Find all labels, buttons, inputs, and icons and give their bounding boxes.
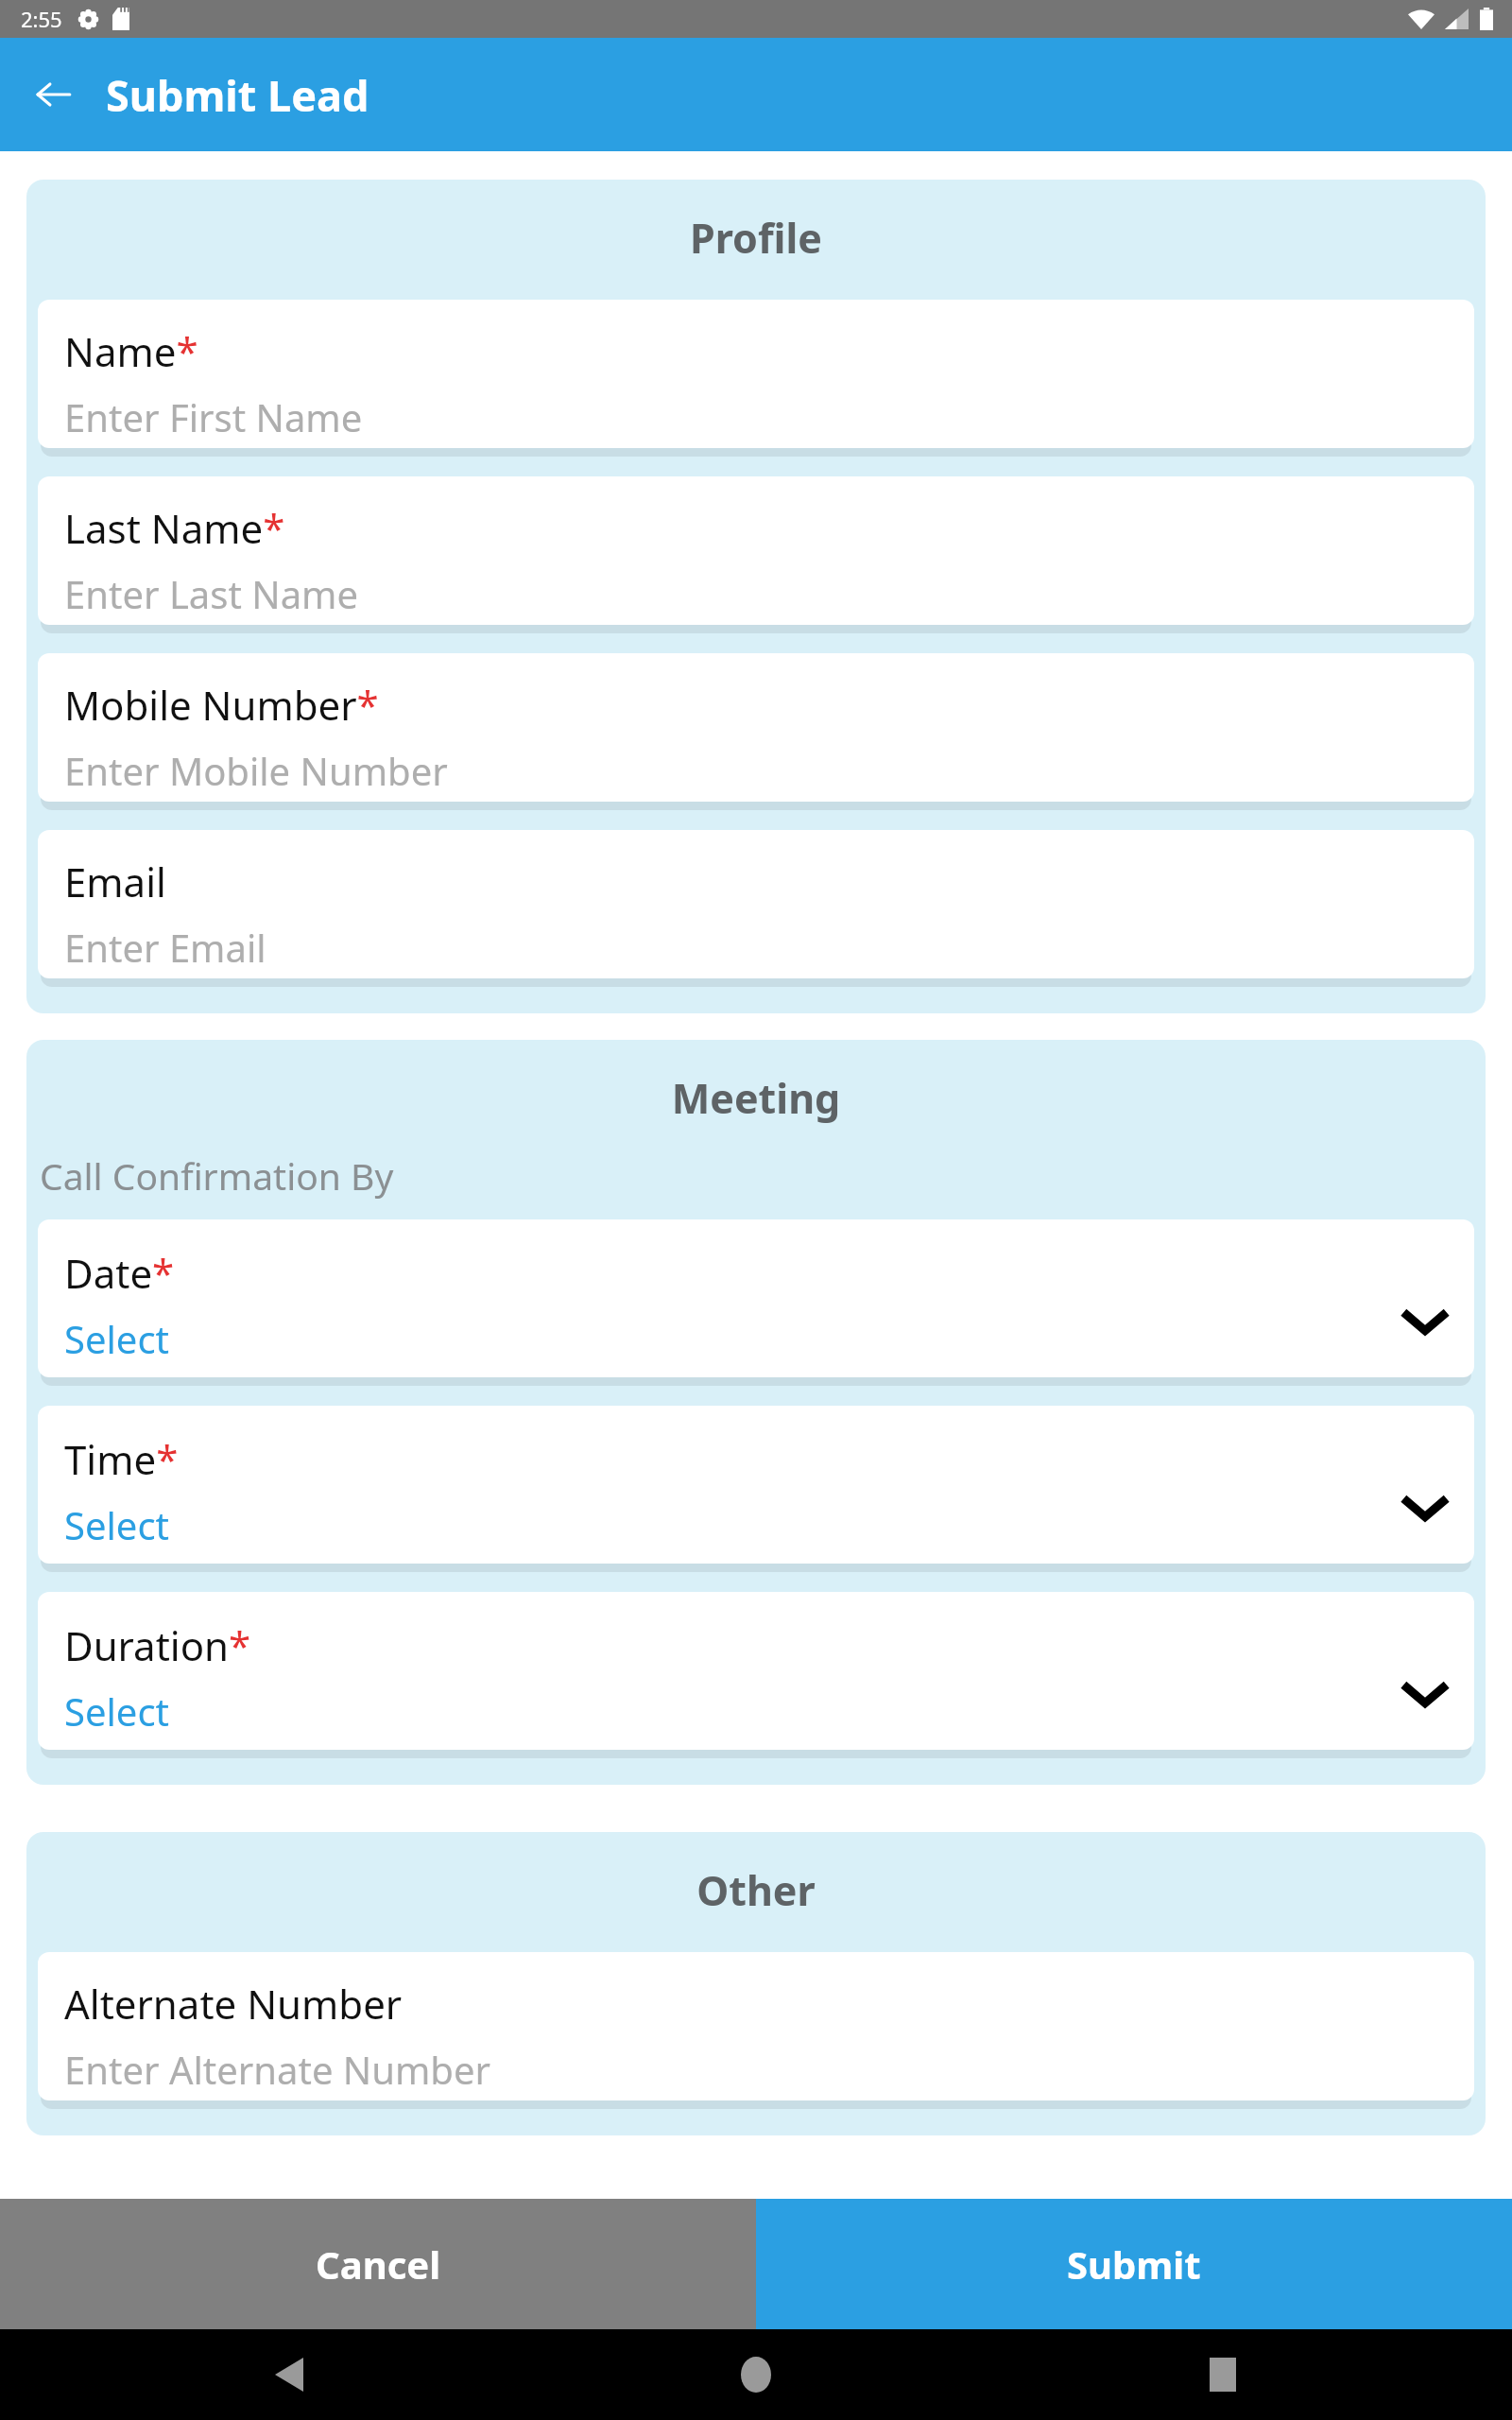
staticText: 2:55 <box>21 5 62 33</box>
staticText: Name* <box>64 324 198 378</box>
staticText: Submit <box>1067 2238 1201 2290</box>
staticText: Enter First Name <box>64 391 363 442</box>
staticText: Date* <box>64 1246 175 1300</box>
staticText: Duration* <box>64 1618 251 1672</box>
button[interactable]: Name* <box>38 300 1474 448</box>
staticText: Other <box>26 1862 1486 1918</box>
staticText: Enter Email <box>64 922 266 973</box>
button[interactable]: Email <box>38 830 1474 978</box>
staticText: Cancel <box>316 2238 441 2290</box>
button[interactable]: Alternate Number <box>38 1952 1474 2100</box>
staticText: Meeting <box>26 1070 1486 1126</box>
staticText: Email <box>64 855 166 908</box>
staticText: Submit Lead <box>106 66 369 124</box>
staticText: Enter Mobile Number <box>64 745 448 796</box>
button[interactable]: Recents <box>1189 2341 1257 2409</box>
staticText: Select <box>64 1685 170 1737</box>
button[interactable]: Home <box>722 2341 790 2409</box>
button[interactable]: Time* <box>38 1406 1474 1564</box>
button[interactable]: Last Name* <box>38 476 1474 625</box>
staticText: Select <box>64 1499 170 1550</box>
staticText: Select <box>64 1313 170 1364</box>
staticText: Enter Alternate Number <box>64 2044 491 2095</box>
staticText: Enter Last Name <box>64 568 359 619</box>
button[interactable]: Cancel <box>0 2199 756 2329</box>
button[interactable]: Back <box>19 60 87 129</box>
button[interactable]: Duration* <box>38 1592 1474 1750</box>
button[interactable]: Date* <box>38 1219 1474 1377</box>
staticText: Mobile Number* <box>64 678 379 732</box>
button[interactable]: Mobile Number* <box>38 653 1474 802</box>
staticText: Profile <box>26 210 1486 266</box>
staticText: Last Name* <box>64 501 285 555</box>
button[interactable]: Submit <box>756 2199 1512 2329</box>
staticText: Time* <box>64 1432 179 1486</box>
staticText: Call Confirmation By <box>40 1150 394 1201</box>
staticText: Alternate Number <box>64 1977 403 2031</box>
button[interactable]: Back <box>255 2341 323 2409</box>
